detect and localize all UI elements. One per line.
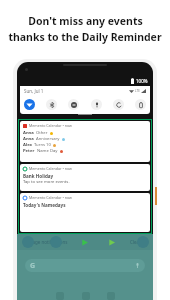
button[interactable]: Quick setting (24, 99, 35, 110)
staticText: 100% (136, 78, 148, 84)
staticText: Anniversary (36, 136, 60, 142)
button[interactable]: Quick setting (46, 99, 57, 110)
staticText: Today's Namedays (23, 202, 66, 208)
button[interactable]: G (25, 259, 145, 272)
staticText: Memento Calendar • now (29, 166, 72, 171)
button[interactable]: Manage notifications (22, 238, 69, 246)
staticText: LTE (135, 89, 140, 93)
button[interactable]: Play (79, 237, 90, 248)
button[interactable]: Memento Calendar • now (20, 164, 150, 191)
staticText: thanks to the Daily Reminder (8, 30, 162, 44)
staticText: Manage notifications (23, 239, 68, 245)
staticText: Other (36, 130, 48, 136)
staticText: Clear all (130, 239, 147, 245)
staticText: Peter (23, 148, 35, 154)
staticText: Alex (23, 142, 32, 148)
button[interactable]: Quick setting (113, 99, 124, 110)
button[interactable]: Memento Calendar • now (20, 121, 150, 162)
staticText: G (30, 261, 36, 271)
staticText: Anna (23, 130, 34, 136)
button[interactable]: Quick setting (91, 99, 102, 110)
staticText: Sun, Jul 1 (24, 88, 44, 94)
button[interactable]: Play (106, 237, 117, 248)
staticText: Tap to see more events. (23, 179, 70, 185)
staticText: Bank Holiday (23, 173, 54, 179)
staticText: Memento Calendar • now (29, 195, 72, 200)
staticText: Don't miss any events (28, 14, 143, 28)
staticText: Name Day (37, 148, 58, 154)
button[interactable]: Quick setting (135, 99, 146, 110)
button[interactable]: Clear all (129, 238, 148, 246)
button[interactable]: Quick setting (68, 99, 79, 110)
staticText: Memento Calendar • now (29, 123, 72, 128)
staticText: Turns 10 (34, 142, 51, 148)
button[interactable]: Memento Calendar • now (20, 193, 150, 232)
staticText: Anna (23, 136, 34, 142)
